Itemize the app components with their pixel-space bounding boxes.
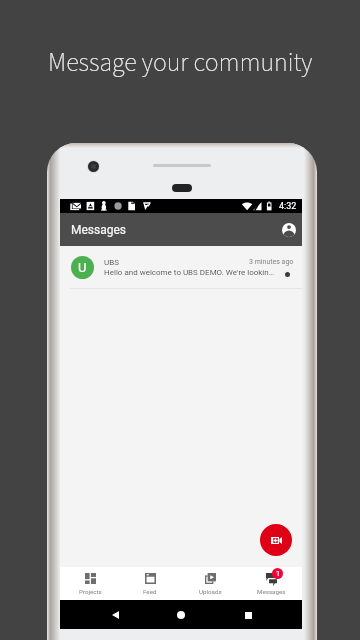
button[interactable]: Account (278, 219, 300, 241)
staticText: Feed (143, 588, 157, 595)
staticText: 3 minutes ago (249, 258, 294, 266)
staticText: 1 (276, 570, 280, 578)
staticText: Hello and welcome to UBS DEMO. We're loo… (104, 268, 275, 277)
staticText: Messages (257, 588, 286, 595)
button[interactable]: 1 (241, 567, 302, 600)
button[interactable]: Recents (236, 603, 260, 627)
staticText: Projects (79, 588, 102, 595)
button[interactable]: Home (169, 603, 193, 627)
staticText: Uploads (199, 588, 222, 595)
staticText: Messages (71, 223, 127, 237)
button[interactable]: Feed (120, 567, 180, 600)
staticText: U (78, 260, 87, 275)
staticText: UBS (104, 258, 119, 267)
button[interactable]: U (60, 246, 302, 288)
button[interactable]: New video message (260, 524, 292, 556)
button[interactable]: Projects (60, 567, 120, 600)
staticText: 4:32 (279, 201, 297, 212)
button[interactable]: Uploads (180, 567, 241, 600)
button[interactable]: Back (103, 603, 127, 627)
staticText: Message your community (48, 44, 313, 81)
